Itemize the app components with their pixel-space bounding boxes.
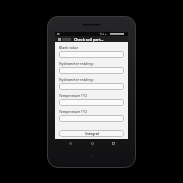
button[interactable]: Blank value (59, 51, 124, 58)
staticText: Hydrometer reading : (59, 61, 95, 66)
button[interactable]: Back (64, 139, 76, 148)
staticText: Check soil part... (74, 37, 104, 42)
button[interactable]: Home (86, 139, 98, 148)
button[interactable]: Temperature (°C) (59, 115, 124, 122)
staticText: Temperature (°C) (59, 109, 88, 114)
button[interactable]: Temperature (°C) (59, 99, 124, 106)
button[interactable]: Hydrometer reading : (59, 67, 124, 74)
staticText: Integral (85, 131, 99, 136)
staticText: Temperature (°C) (59, 93, 88, 98)
button[interactable]: Recent apps (107, 139, 119, 148)
button[interactable]: Integral (59, 130, 124, 137)
button[interactable]: Hydrometer reading : (59, 83, 124, 90)
staticText: Blank value (59, 45, 79, 50)
staticText: Hydrometer reading : (59, 77, 95, 82)
button[interactable]: Navigate up (57, 37, 61, 41)
